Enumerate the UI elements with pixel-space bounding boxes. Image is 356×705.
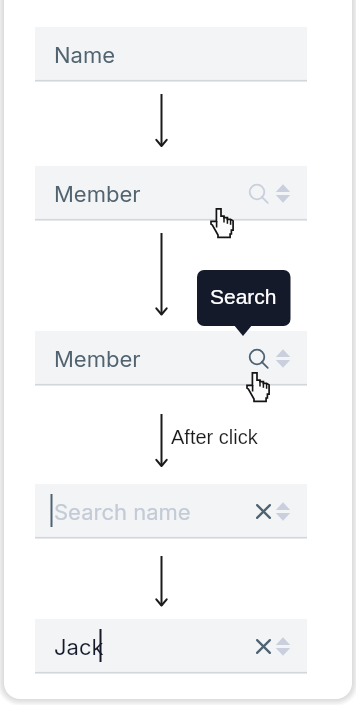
staticText: Search: [210, 285, 277, 308]
staticText: Member: [54, 346, 141, 373]
staticText: After click: [171, 426, 258, 448]
button[interactable]: Clear: [254, 637, 273, 656]
button[interactable]: [35, 484, 307, 539]
button[interactable]: [35, 166, 307, 221]
button[interactable]: Search: [248, 183, 267, 202]
staticText: Name: [54, 42, 116, 69]
staticText: Search name: [54, 499, 191, 526]
button[interactable]: Sort: [274, 348, 293, 367]
staticText: Member: [54, 181, 141, 208]
button[interactable]: Sort: [274, 502, 293, 521]
staticText: Jack: [54, 634, 104, 661]
button[interactable]: [35, 331, 307, 386]
button[interactable]: Sort: [274, 637, 293, 656]
button[interactable]: Search: [248, 348, 267, 367]
button[interactable]: Sort: [274, 183, 293, 202]
button[interactable]: Clear: [254, 502, 273, 521]
button[interactable]: [35, 27, 307, 82]
button[interactable]: [35, 619, 307, 674]
